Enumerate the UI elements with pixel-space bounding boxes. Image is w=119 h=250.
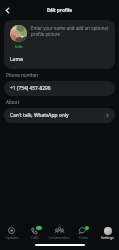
button[interactable]: Chats [71, 223, 95, 240]
button[interactable]: +1 (754) 457-8296 [4, 81, 115, 96]
staticText: Communities [48, 235, 70, 240]
button[interactable]: Settings [95, 223, 119, 240]
staticText: About [6, 99, 20, 105]
button[interactable]: Back [0, 3, 14, 17]
button[interactable]: Communities [47, 223, 71, 240]
button[interactable]: Can't talk, WhatsApp only [4, 108, 115, 123]
staticText: Can't talk, WhatsApp only [10, 112, 105, 119]
staticText: Updates [5, 235, 19, 240]
staticText: +1 (754) 457-8296 [10, 85, 51, 92]
staticText: Calls [31, 235, 39, 240]
staticText: Enter your name and add an optional prof… [31, 25, 110, 37]
staticText: Edit profile [47, 7, 73, 13]
button[interactable]: Change profile photo [10, 25, 27, 50]
button[interactable]: Updates [0, 223, 23, 240]
staticText: Edit [15, 44, 23, 50]
staticText: Settings [101, 235, 114, 240]
staticText: Chats [79, 235, 88, 240]
staticText: Lama [10, 56, 23, 63]
button[interactable]: Calls [23, 223, 47, 240]
staticText: Phone number [6, 72, 39, 78]
